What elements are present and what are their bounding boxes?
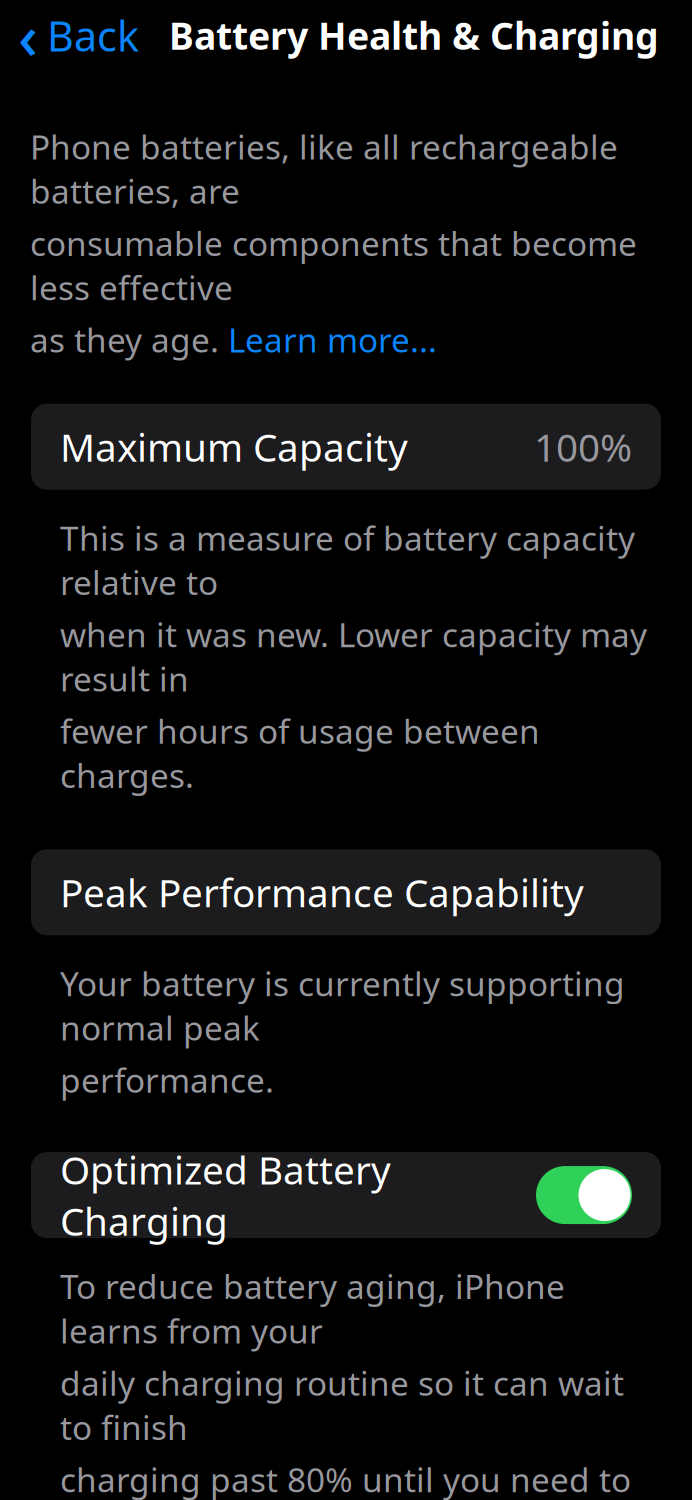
button[interactable]: Optimized Battery Charging (31, 1152, 661, 1238)
staticText: daily charging routine so it can wait to… (60, 1361, 624, 1449)
staticText: Back (47, 8, 139, 63)
staticText: charging past 80% until you need to use … (60, 1457, 631, 1500)
staticText: consumable components that become less e… (30, 221, 637, 309)
staticText: Maximum Capacity (60, 421, 408, 472)
staticText: Phone batteries, like all rechargeable b… (30, 124, 618, 213)
button[interactable]: Learn more... (228, 317, 437, 362)
staticText: performance. (60, 1058, 274, 1102)
staticText: as they age. (30, 317, 228, 362)
staticText: Your battery is currently supporting nor… (60, 961, 625, 1050)
staticText: Learn more... (228, 317, 437, 362)
button[interactable]: ‹ (0, 7, 145, 63)
staticText: ‹ (18, 0, 38, 76)
button[interactable]: Peak Performance Capability (31, 849, 661, 935)
button[interactable]: Maximum Capacity (31, 404, 661, 490)
staticText: Optimized Battery Charging (60, 1144, 391, 1246)
staticText: This is a measure of battery capacity re… (60, 516, 635, 604)
staticText: To reduce battery aging, iPhone learns f… (60, 1264, 565, 1353)
staticText: Peak Performance Capability (60, 867, 584, 918)
staticText: when it was new. Lower capacity may resu… (60, 612, 647, 701)
staticText: fewer hours of usage between charges. (60, 709, 540, 797)
staticText: Battery Health & Charging (169, 11, 659, 60)
staticText: 100% (534, 421, 632, 472)
